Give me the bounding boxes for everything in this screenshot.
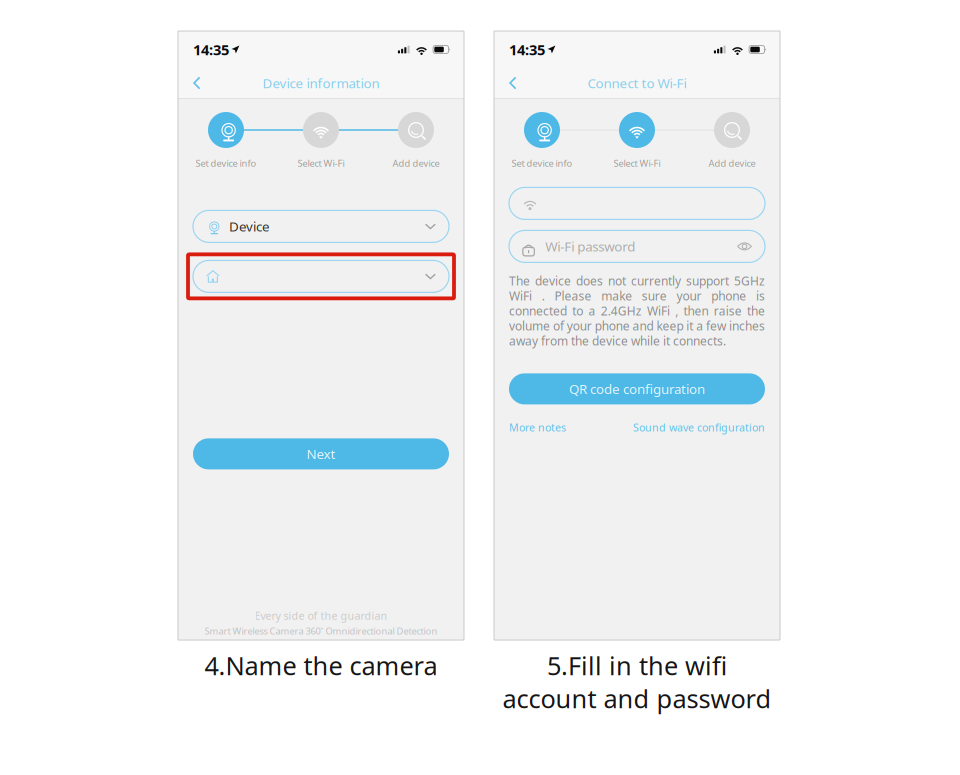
staticText: Please (554, 288, 591, 304)
staticText: 5GHz (734, 273, 765, 289)
staticText: raise (714, 303, 742, 319)
staticText: Select Wi-Fi (297, 157, 344, 169)
staticText: inches (729, 318, 765, 334)
button[interactable]: Choose room (188, 254, 454, 298)
staticText: your (567, 318, 592, 334)
staticText: currently (631, 273, 681, 289)
staticText: WiFi (647, 303, 670, 319)
staticText: , (675, 303, 678, 319)
staticText: make (601, 288, 632, 304)
staticText: Set device info (511, 157, 572, 169)
staticText: phone (711, 288, 746, 304)
staticText: . (542, 288, 545, 304)
staticText: Add device (392, 157, 439, 169)
button[interactable]: Back (494, 68, 530, 98)
staticText: More notes (509, 420, 566, 435)
staticText: a (696, 318, 703, 334)
button[interactable]: Device (193, 210, 449, 242)
staticText: Device (229, 217, 270, 235)
staticText: to (572, 303, 583, 319)
staticText: sure (642, 288, 667, 304)
staticText: it (686, 318, 693, 334)
staticText: your (677, 288, 702, 304)
staticText: device (535, 273, 571, 289)
staticText: is (756, 288, 765, 304)
staticText: does (576, 273, 603, 289)
staticText: 14:35 (193, 40, 229, 59)
staticText: then (683, 303, 708, 319)
staticText: Connect to Wi-Fi (587, 74, 686, 92)
button[interactable]: Wi-Fi password (509, 230, 765, 262)
staticText: Wi-Fi password (545, 237, 635, 255)
staticText: not (608, 273, 626, 289)
staticText: a (588, 303, 595, 319)
staticText: the (747, 303, 765, 319)
staticText: volume (509, 318, 550, 334)
staticText: phone (595, 318, 630, 334)
staticText: and (633, 318, 654, 334)
staticText: Set device info (195, 157, 256, 169)
staticText: The (509, 273, 530, 289)
button[interactable]: Next (193, 438, 449, 469)
button[interactable]: Sound wave configuration (633, 420, 765, 435)
button[interactable]: Wi-Fi network (509, 187, 765, 219)
staticText: 2.4GHz (601, 303, 642, 319)
staticText: keep (656, 318, 683, 334)
staticText: connected (509, 303, 567, 319)
staticText: WiFi (509, 288, 532, 304)
staticText: few (706, 318, 726, 334)
button[interactable]: Back (178, 68, 214, 98)
button[interactable]: More notes (509, 420, 566, 435)
staticText: Select Wi-Fi (613, 157, 660, 169)
staticText: 14:35 (509, 40, 545, 59)
staticText: account and password (502, 682, 771, 715)
staticText: support (686, 273, 729, 289)
staticText: Next (306, 445, 335, 463)
staticText: QR code configuration (569, 380, 705, 398)
staticText: away from the device while it connects. (509, 333, 726, 349)
staticText: Sound wave configuration (633, 420, 765, 435)
staticText: of (553, 318, 564, 334)
staticText: Add device (708, 157, 755, 169)
staticText: Smart Wireless Camera 360˚ Omnidirection… (204, 625, 437, 637)
staticText: Every side of the guardian (254, 608, 387, 623)
button[interactable]: QR code configuration (509, 373, 765, 404)
staticText: 5.Fill in the wifi (547, 649, 727, 682)
staticText: 4.Name the camera (204, 649, 437, 682)
staticText: Device information (262, 74, 379, 92)
